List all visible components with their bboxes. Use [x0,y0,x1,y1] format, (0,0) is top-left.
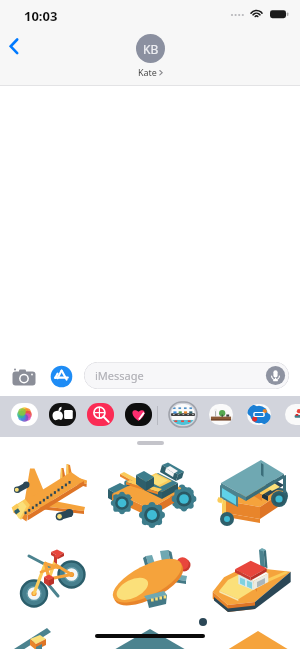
button[interactable]: Transport stickers [169,402,197,427]
button[interactable]: Bicycle sticker [0,534,100,619]
button[interactable]: Digital Touch [125,403,152,426]
button[interactable]: Record audio message [265,365,286,386]
button[interactable]: Camera [10,364,38,392]
button[interactable]: iMessage [84,362,289,389]
button[interactable]: More stickers [283,402,300,427]
button[interactable]: Furniture stickers [207,402,235,427]
button[interactable]: App Store [50,365,73,388]
button[interactable]: Bus sticker [200,619,300,649]
button[interactable]: Boat sticker [200,534,300,619]
button[interactable]: Apple Pay [49,403,76,426]
staticText: KB [143,41,159,57]
button[interactable]: KB [136,34,165,78]
staticText: iMessage [95,368,144,383]
staticText: Kate [138,66,157,78]
button[interactable]: Scooter sticker [0,619,100,649]
button[interactable]: Airplane sticker [0,449,100,534]
button[interactable]: Sport stickers [245,402,273,427]
button[interactable]: Photos [11,403,38,426]
button[interactable]: Airship sticker [100,534,200,619]
button[interactable]: Train sticker [100,619,200,649]
button[interactable]: Back [0,32,30,61]
button[interactable]: Tuk tuk sticker [200,449,300,534]
staticText: 10:03 [24,7,58,25]
button[interactable]: Buggy sticker [100,449,200,534]
button[interactable]: Images [87,403,114,426]
